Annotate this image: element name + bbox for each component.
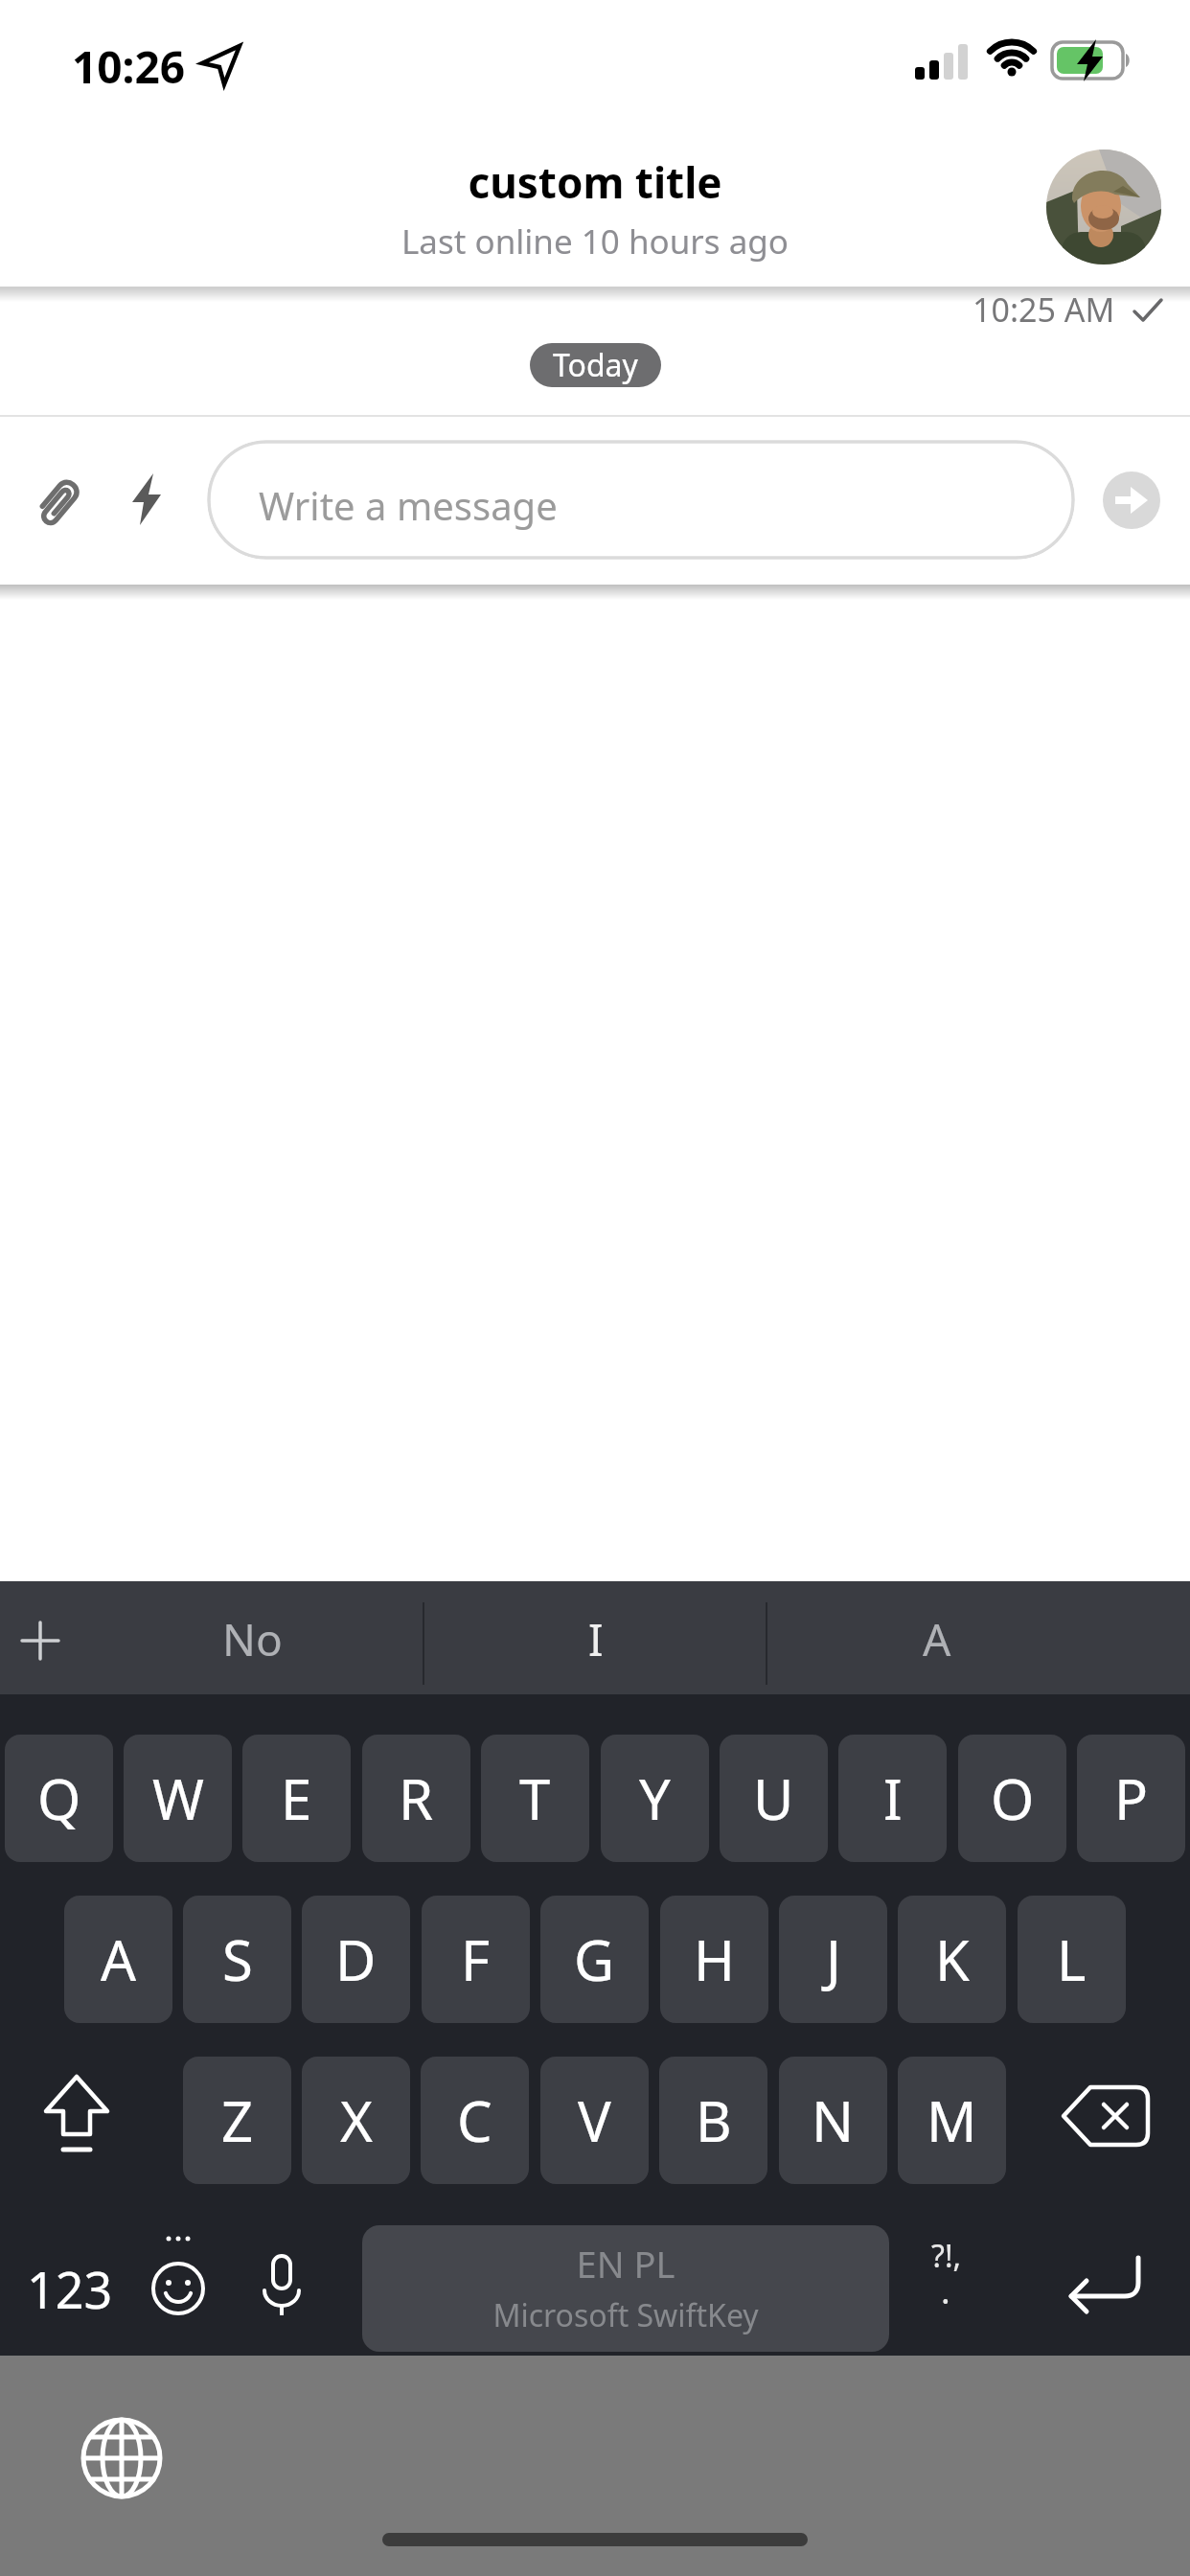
staticText: D [335,1921,377,1997]
staticText: ?!, [931,2235,962,2277]
staticText: L [1057,1921,1087,1997]
button[interactable]: X [302,2057,410,2184]
button[interactable] [80,2416,164,2500]
staticText: N [812,2082,855,2158]
staticText: custom title [0,153,1190,211]
staticText: H [694,1921,735,1997]
staticText: I [883,1760,903,1836]
staticText: C [457,2082,492,2158]
staticText: J [826,1921,841,1997]
button[interactable]: T [481,1735,589,1862]
staticText: . [941,2267,950,2314]
staticText: 10:26 [72,36,186,97]
button[interactable] [1062,2254,1148,2321]
button[interactable] [257,2254,307,2323]
button[interactable]: I [838,1735,947,1862]
button[interactable]: 123 [13,2235,126,2342]
button[interactable] [1103,471,1160,529]
button[interactable] [21,1621,59,1660]
staticText: A [101,1921,137,1997]
button[interactable]: EN PL [362,2225,889,2352]
button[interactable]: Q [5,1735,113,1862]
button[interactable]: N [779,2057,887,2184]
button[interactable]: K [898,1896,1006,2023]
staticText: T [519,1760,551,1836]
button[interactable]: Write a message [207,440,1075,560]
staticText: O [991,1760,1035,1836]
button[interactable]: B [659,2057,767,2184]
button[interactable]: G [540,1896,649,2023]
staticText: U [753,1760,794,1836]
button[interactable]: M [898,2057,1006,2184]
button[interactable]: C [421,2057,529,2184]
staticText: G [574,1921,615,1997]
staticText: S [222,1921,253,1997]
button[interactable]: F [422,1896,530,2023]
button[interactable]: D [302,1896,410,2023]
button[interactable]: S [183,1896,291,2023]
staticText: W [152,1760,204,1836]
staticText: M [927,2082,977,2158]
staticText: Microsoft SwiftKey [362,2294,889,2336]
button[interactable]: Y [601,1735,709,1862]
button[interactable]: J [779,1896,887,2023]
staticText: A [923,1609,951,1669]
button[interactable]: W [124,1735,232,1862]
button[interactable]: V [540,2057,649,2184]
button[interactable]: Z [183,2057,291,2184]
button[interactable] [132,473,171,527]
staticText: 123 [27,2255,113,2323]
button[interactable] [40,2075,113,2167]
staticText: B [696,2082,732,2158]
button[interactable]: No [81,1585,423,1692]
staticText: Z [221,2082,254,2158]
staticText: No [222,1609,283,1669]
button[interactable] [32,473,85,531]
staticText: Y [639,1760,671,1836]
button[interactable]: O [958,1735,1066,1862]
staticText: K [935,1921,970,1997]
button[interactable]: U [720,1735,828,1862]
button[interactable]: R [362,1735,470,1862]
staticText: Last online 10 hours ago [0,218,1190,264]
button[interactable]: L [1018,1896,1126,2023]
button[interactable] [1062,2085,1150,2147]
staticText: V [578,2082,611,2158]
staticText: Today [553,344,638,386]
staticText: R [399,1760,434,1836]
button[interactable]: ?!, [904,2225,1000,2340]
staticText: EN PL [362,2239,889,2288]
button[interactable]: P [1077,1735,1185,1862]
button[interactable] [1046,149,1161,264]
staticText: 10:25 AM [973,287,1115,332]
staticText: Write a message [259,479,558,531]
button[interactable] [149,2233,207,2319]
staticText: Q [37,1760,81,1836]
button[interactable]: A [767,1585,1108,1692]
button[interactable]: E [242,1735,351,1862]
staticText: E [281,1760,312,1836]
staticText: X [340,2082,373,2158]
staticText: P [1114,1760,1149,1836]
button[interactable]: A [64,1896,172,2023]
button[interactable]: H [660,1896,768,2023]
staticText: I [588,1609,604,1669]
staticText: F [461,1921,491,1997]
button[interactable]: I [426,1585,766,1692]
